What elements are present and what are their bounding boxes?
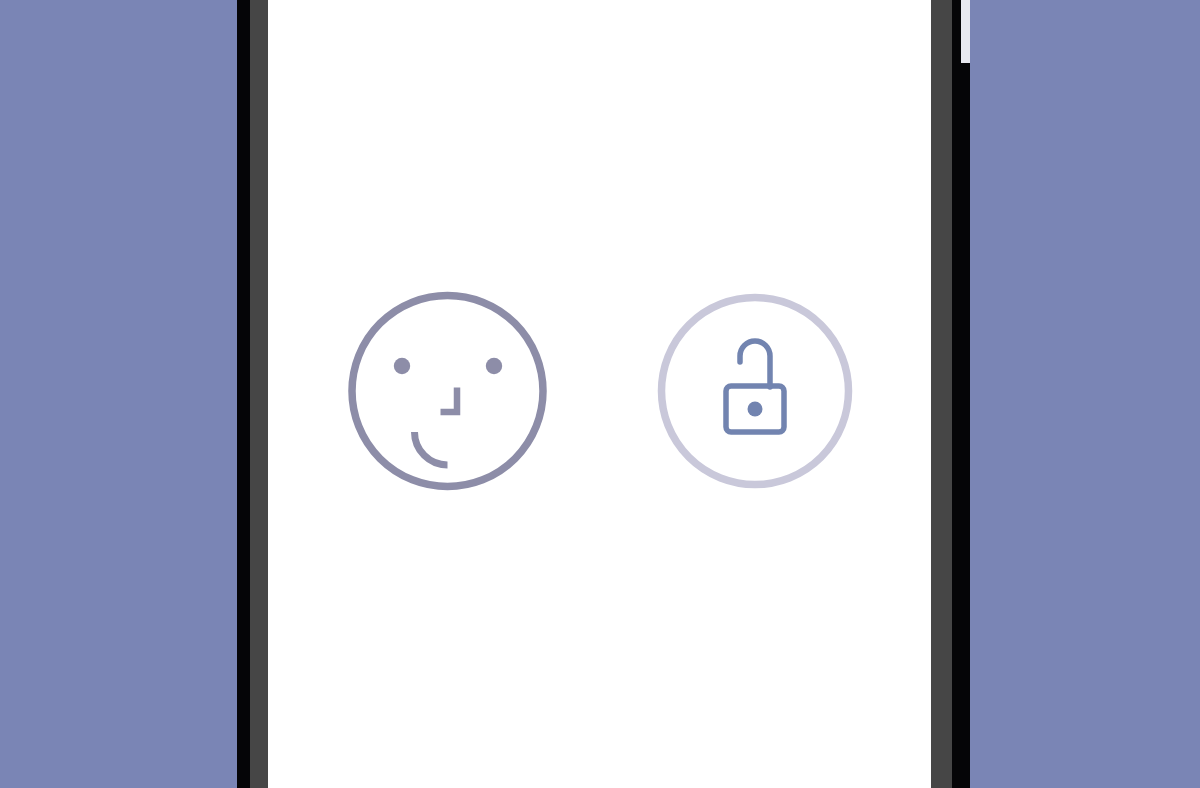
button[interactable]: Unlock bbox=[652, 288, 860, 496]
button[interactable]: Face unlock bbox=[340, 284, 555, 499]
